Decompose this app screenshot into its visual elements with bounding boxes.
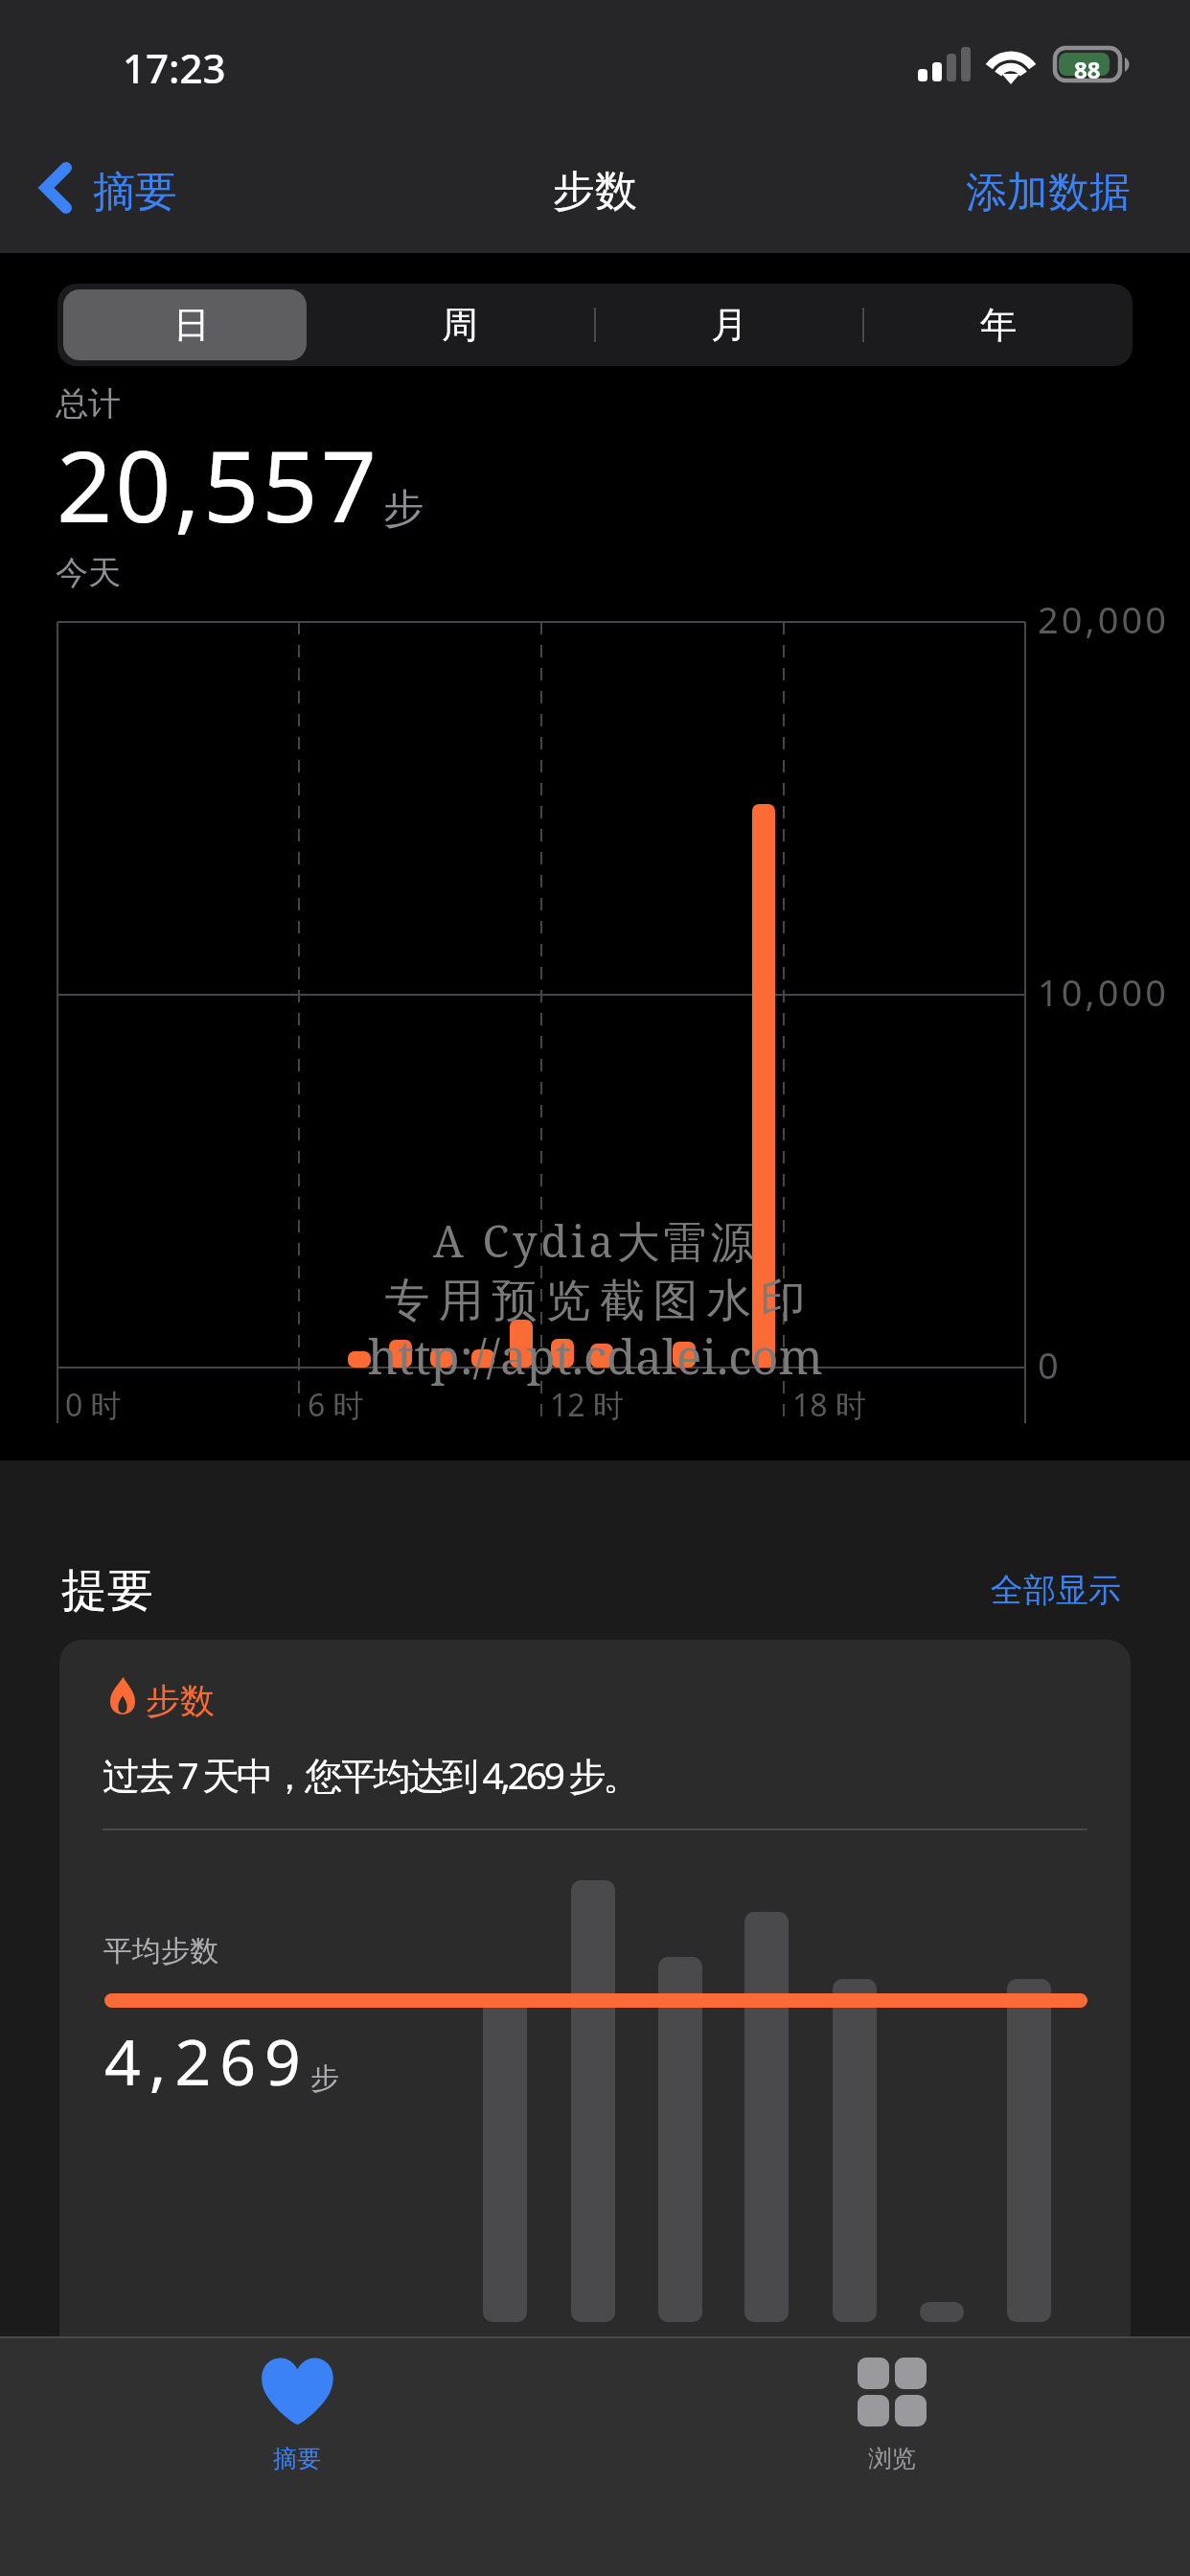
staticText: http://apt.cdalei.com bbox=[368, 1324, 823, 1389]
button[interactable]: 步数 bbox=[59, 1640, 1131, 2406]
staticText: 步 bbox=[383, 484, 423, 535]
staticText: 专用预览截图水印 bbox=[380, 1273, 810, 1329]
staticText: 步数 bbox=[146, 1679, 215, 1722]
staticText: 今天 bbox=[56, 552, 121, 593]
staticText: 88 bbox=[1074, 54, 1101, 85]
button[interactable]: 摘要 bbox=[149, 2336, 446, 2576]
button[interactable]: 日 bbox=[57, 284, 326, 366]
button[interactable]: 浏览 bbox=[744, 2336, 1041, 2576]
staticText: 提要 bbox=[61, 1562, 153, 1620]
staticText: 20,557 bbox=[57, 418, 380, 551]
staticText: 10,000 bbox=[1038, 967, 1169, 1017]
staticText: 总计 bbox=[56, 383, 121, 425]
staticText: A Cydia大雷源 bbox=[433, 1211, 758, 1270]
staticText: 日 bbox=[173, 302, 210, 348]
staticText: 周 bbox=[442, 302, 478, 348]
staticText: 添加数据 bbox=[966, 167, 1131, 218]
staticText: 20,000 bbox=[1038, 594, 1169, 644]
button[interactable]: 月 bbox=[594, 284, 863, 366]
staticText: 0 bbox=[1038, 1340, 1059, 1390]
staticText: 步数 bbox=[553, 165, 637, 218]
staticText: 摘要 bbox=[93, 166, 177, 218]
staticText: 全部显示 bbox=[991, 1570, 1121, 1611]
button[interactable]: 年 bbox=[863, 284, 1133, 366]
button[interactable]: 摘要 bbox=[26, 148, 195, 228]
staticText: 月 bbox=[711, 302, 747, 348]
staticText: 18 时 bbox=[792, 1384, 866, 1426]
button[interactable]: 添加数据 bbox=[947, 151, 1190, 232]
staticText: 步 bbox=[310, 2060, 339, 2097]
staticText: 过去 7 天中，您平均达到 4,269 步。 bbox=[103, 1749, 637, 1800]
staticText: 0 时 bbox=[65, 1384, 122, 1426]
button[interactable]: 全部显示 bbox=[983, 1564, 1129, 1617]
staticText: 平均步数 bbox=[103, 1933, 218, 1969]
staticText: 年 bbox=[980, 302, 1017, 348]
staticText: 摘要 bbox=[273, 2444, 321, 2473]
staticText: 浏览 bbox=[868, 2444, 916, 2473]
button[interactable]: 周 bbox=[326, 284, 594, 366]
staticText: 4,269 bbox=[104, 2017, 309, 2104]
staticText: 12 时 bbox=[550, 1384, 624, 1426]
staticText: 6 时 bbox=[308, 1384, 364, 1426]
staticText: 17:23 bbox=[123, 40, 226, 95]
